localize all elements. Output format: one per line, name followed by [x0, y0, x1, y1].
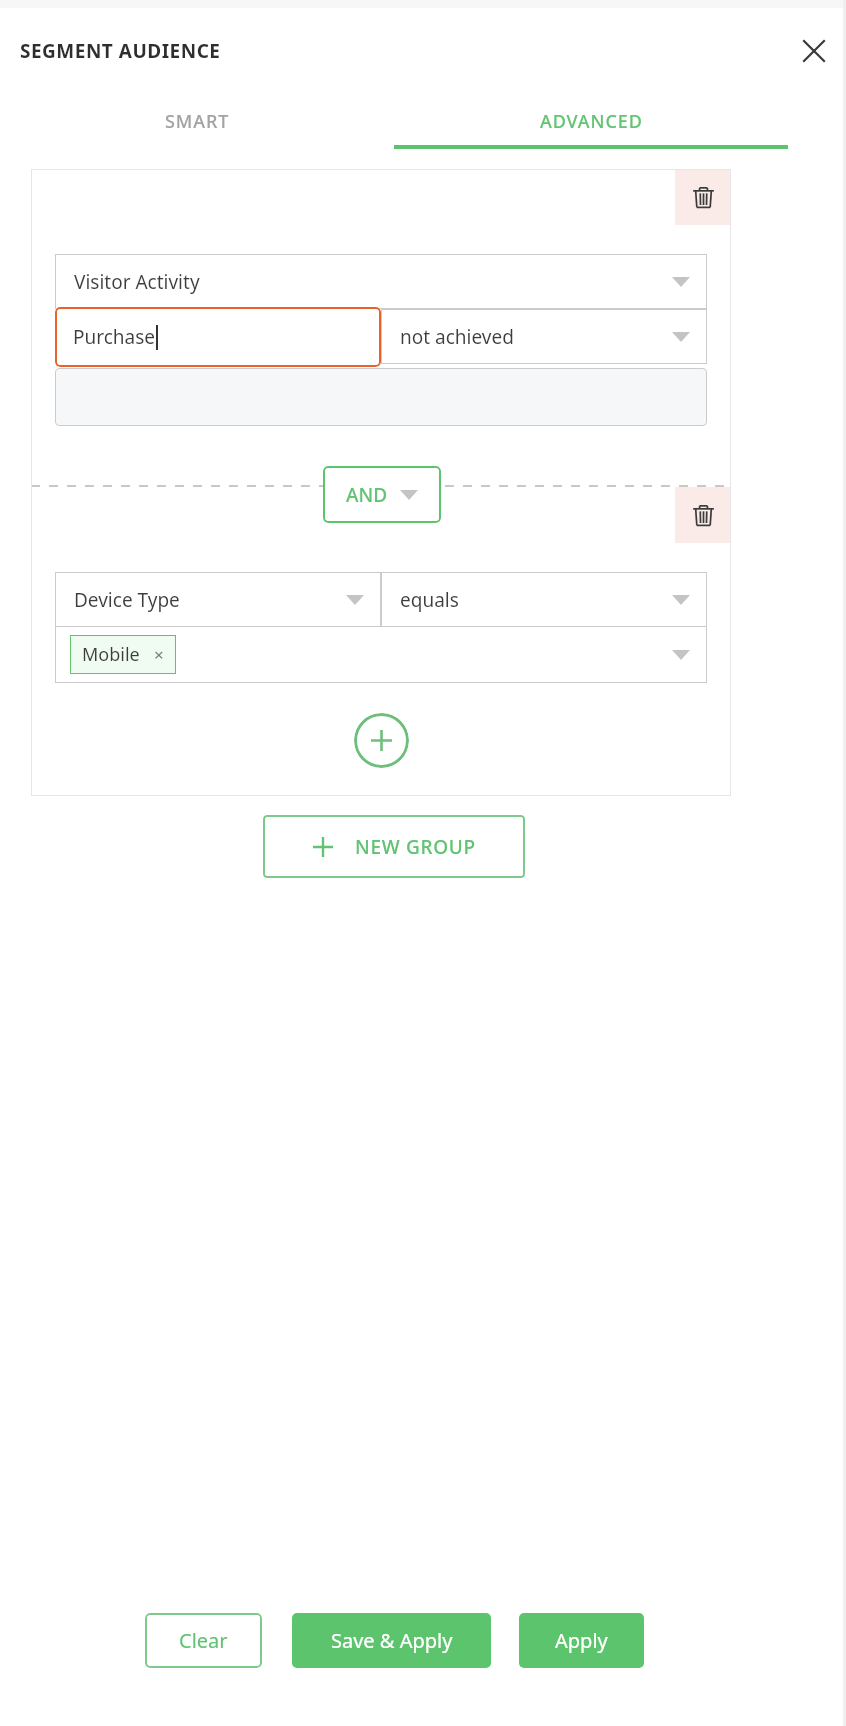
button[interactable]: Add condition	[354, 713, 409, 768]
staticText: Visitor Activity	[74, 269, 200, 295]
button[interactable]: Save & Apply	[292, 1613, 491, 1668]
staticText: SMART	[165, 109, 230, 134]
button[interactable]: equals	[381, 572, 707, 627]
button[interactable]: Close	[794, 31, 834, 71]
button[interactable]: Delete group	[675, 487, 731, 543]
button[interactable]: Device Type	[55, 572, 381, 627]
button[interactable]: AND	[323, 466, 441, 523]
staticText: ADVANCED	[540, 109, 643, 134]
staticText: Purchase	[73, 324, 156, 350]
staticText: equals	[400, 587, 459, 613]
button[interactable]: Mobile	[55, 626, 707, 683]
staticText: not achieved	[400, 324, 514, 350]
staticText: AND	[346, 482, 388, 508]
button[interactable]: not achieved	[381, 309, 707, 364]
button[interactable]: Visitor Activity	[55, 254, 707, 309]
staticText: Mobile	[82, 642, 140, 667]
button[interactable]: ADVANCED	[394, 94, 788, 149]
staticText: Apply	[555, 1627, 608, 1654]
button[interactable]: Mobile	[82, 635, 164, 674]
staticText: ×	[154, 643, 164, 666]
staticText: NEW GROUP	[355, 834, 476, 860]
button[interactable]: SMART	[0, 94, 394, 149]
button[interactable]	[55, 368, 707, 426]
button[interactable]: Purchase	[55, 307, 381, 367]
button[interactable]: NEW GROUP	[263, 815, 525, 878]
staticText: Save & Apply	[331, 1627, 453, 1654]
button[interactable]: Apply	[519, 1613, 644, 1668]
staticText: Clear	[179, 1627, 228, 1654]
button[interactable]: Delete group	[675, 169, 731, 225]
staticText: Device Type	[74, 587, 180, 613]
button[interactable]: Clear	[145, 1613, 262, 1668]
staticText: SEGMENT AUDIENCE	[20, 38, 221, 64]
